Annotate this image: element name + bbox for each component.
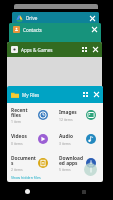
staticText: 12 items — [59, 117, 73, 122]
button[interactable]: Videos — [11, 127, 48, 151]
staticText: 1 item — [11, 119, 22, 124]
button[interactable]: Audio — [59, 127, 96, 151]
staticText: Downloaded apps — [59, 155, 85, 166]
button[interactable]: My Files — [7, 86, 103, 182]
button[interactable]: Close — [87, 13, 98, 24]
staticText: Images — [59, 109, 77, 116]
staticText: Videos — [11, 133, 27, 140]
staticText: Apps & Games — [21, 47, 53, 53]
button[interactable]: Images — [59, 103, 96, 127]
staticText: Contacts — [23, 27, 42, 33]
button[interactable]: Recent files — [11, 103, 48, 127]
button[interactable]: Close — [89, 24, 100, 35]
staticText: 0 items — [11, 141, 23, 146]
button[interactable]: Close — [90, 44, 101, 55]
button[interactable]: Recents — [77, 185, 90, 198]
button[interactable]: Drive — [12, 12, 99, 24]
button[interactable]: Add — [84, 163, 97, 176]
staticText: My Files — [22, 92, 40, 98]
button[interactable] — [14, 4, 98, 9]
staticText: Drive — [26, 15, 38, 21]
button[interactable]: Split screen — [79, 44, 90, 55]
button[interactable]: Close — [91, 89, 102, 100]
button[interactable]: Downloaded apps — [59, 151, 96, 175]
staticText: Documents — [11, 155, 37, 166]
staticText: 2 items — [11, 167, 23, 172]
button[interactable]: Split screen — [80, 89, 91, 100]
button[interactable]: Home — [21, 185, 34, 198]
staticText: Audio — [59, 133, 73, 140]
staticText: Recent files — [11, 107, 37, 118]
button[interactable]: Apps & Games — [7, 42, 102, 87]
staticText: 5 items — [59, 167, 71, 172]
staticText: 3 items — [59, 141, 71, 146]
button[interactable]: Show hidden files — [11, 175, 41, 180]
button[interactable]: Documents — [11, 151, 48, 175]
button[interactable]: Contacts — [9, 23, 101, 43]
